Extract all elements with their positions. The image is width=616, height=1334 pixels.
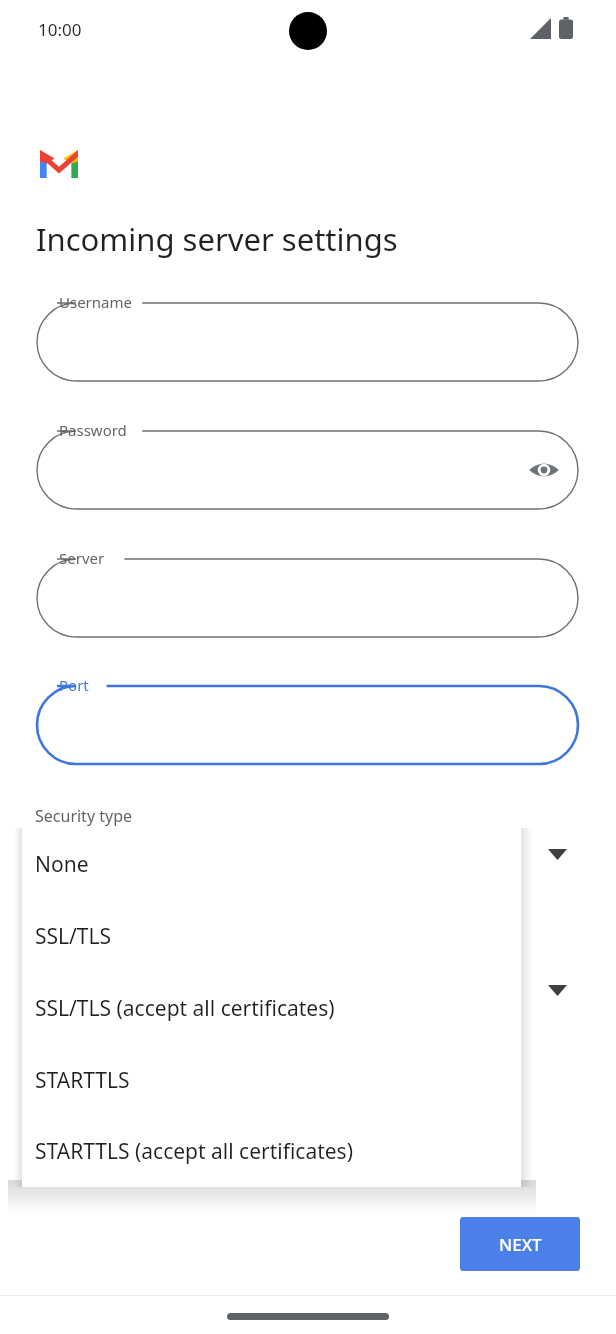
- button[interactable]: NEXT: [460, 1217, 580, 1271]
- button[interactable]: STARTTLS: [22, 1044, 521, 1116]
- button[interactable]: Password: [37, 419, 578, 509]
- staticText: NEXT: [499, 1233, 542, 1256]
- other: Open authentication type menu: [548, 985, 567, 996]
- staticText: STARTTLS (accept all certificates): [35, 1137, 353, 1166]
- staticText: Server: [59, 548, 105, 568]
- staticText: Security type: [35, 805, 133, 827]
- other: Open security type menu: [548, 849, 567, 860]
- staticText: SSL/TLS (accept all certificates): [35, 994, 335, 1023]
- button[interactable]: None: [22, 828, 521, 900]
- staticText: 10:00: [38, 18, 82, 41]
- button[interactable]: SSL/TLS: [22, 900, 521, 972]
- button[interactable]: STARTTLS (accept all certificates): [22, 1116, 521, 1187]
- button[interactable]: SSL/TLS (accept all certificates): [22, 972, 521, 1044]
- button[interactable]: Port: [37, 674, 578, 764]
- staticText: STARTTLS: [35, 1066, 130, 1095]
- staticText: Password: [59, 420, 127, 440]
- staticText: None: [35, 850, 89, 879]
- button[interactable]: Username: [37, 291, 578, 381]
- staticText: Incoming server settings: [36, 218, 398, 260]
- staticText: Username: [59, 292, 132, 312]
- staticText: SSL/TLS: [35, 922, 112, 951]
- button[interactable]: Server: [37, 547, 578, 637]
- button[interactable]: Show password: [526, 452, 562, 488]
- staticText: Port: [59, 675, 89, 695]
